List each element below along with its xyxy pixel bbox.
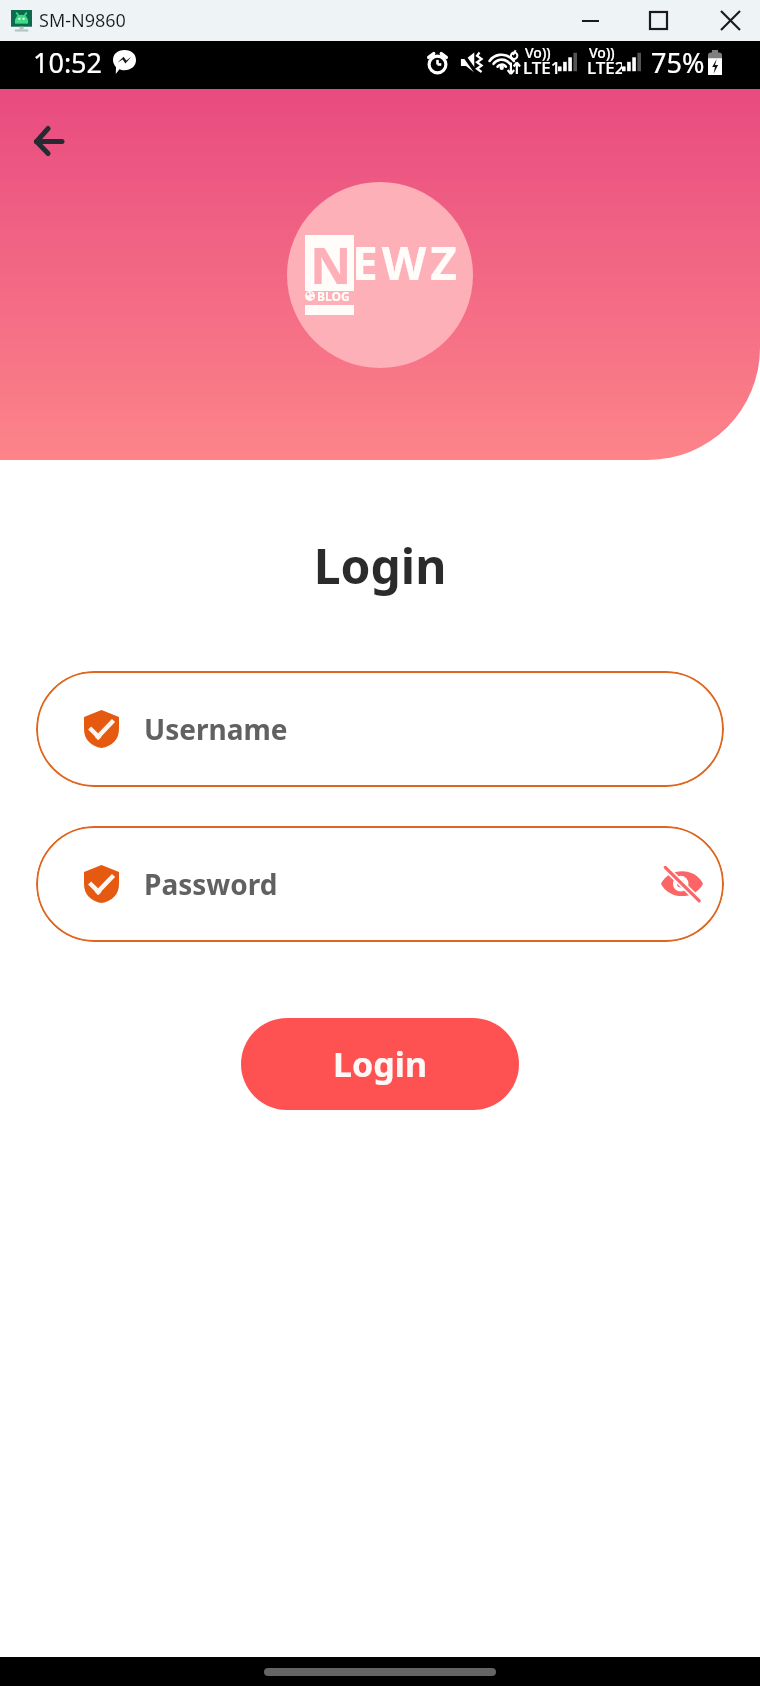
button[interactable]: Show password: [656, 858, 708, 910]
button[interactable]: Password: [36, 826, 724, 942]
staticText: Vo)): [525, 43, 551, 62]
button[interactable]: Login: [241, 1018, 519, 1110]
button[interactable]: Close: [700, 0, 760, 41]
staticText: LTE1: [523, 56, 558, 79]
button[interactable]: Maximize: [616, 0, 700, 41]
staticText: BLOG: [317, 288, 350, 304]
staticText: SM-N9860: [39, 8, 126, 33]
button[interactable]: Minimize: [564, 0, 616, 41]
staticText: 75%: [651, 44, 705, 81]
staticText: LTE2: [587, 56, 622, 79]
staticText: N: [310, 229, 352, 298]
staticText: Vo)): [589, 43, 615, 62]
button[interactable]: Back: [20, 112, 78, 170]
button[interactable]: Username: [36, 671, 724, 787]
staticText: Login: [333, 1041, 428, 1087]
staticText: 10:52: [33, 44, 103, 81]
staticText: EWZ: [352, 231, 461, 294]
staticText: Login: [0, 533, 760, 598]
staticText: Password: [144, 865, 278, 903]
staticText: Username: [144, 710, 288, 748]
